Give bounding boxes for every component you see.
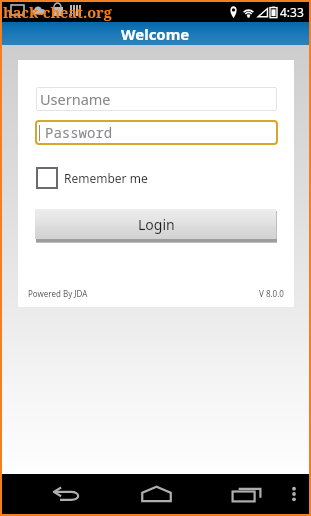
staticText: hack-cheat.org <box>3 2 112 22</box>
button[interactable]: Remember me <box>36 167 148 189</box>
button[interactable]: Password <box>35 120 278 145</box>
staticText: Powered By JDA <box>28 288 88 299</box>
staticText: Username <box>40 89 111 109</box>
button[interactable]: Username <box>36 87 277 111</box>
staticText: Remember me <box>64 170 148 186</box>
button[interactable]: Recents <box>201 474 291 514</box>
staticText: V 8.0.0 <box>259 288 284 299</box>
button[interactable]: Login <box>35 209 277 242</box>
staticText: 4:33 <box>280 4 304 20</box>
staticText: Login <box>138 215 175 234</box>
button[interactable]: Back <box>21 474 111 514</box>
staticText: Welcome <box>121 24 190 44</box>
button[interactable]: More options <box>291 474 309 514</box>
button[interactable]: Home <box>111 474 201 514</box>
staticText: Password <box>45 123 113 142</box>
